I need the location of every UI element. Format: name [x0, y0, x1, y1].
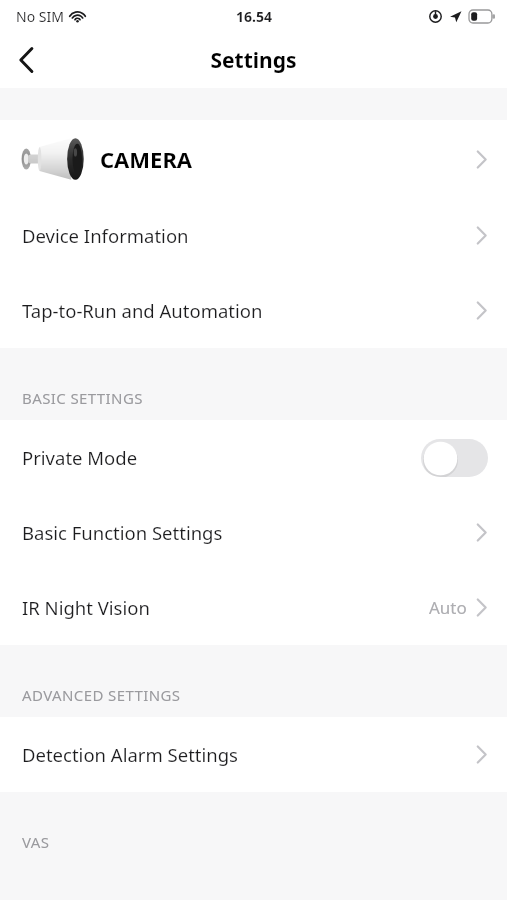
button[interactable]: Back — [0, 34, 52, 86]
staticText: BASIC SETTINGS — [22, 388, 143, 408]
staticText: No SIM — [16, 7, 64, 26]
button[interactable]: Basic Function Settings — [0, 495, 507, 570]
button[interactable]: Detection Alarm Settings — [0, 717, 507, 792]
staticText: 16.54 — [236, 7, 272, 26]
button[interactable]: Private Mode toggle — [421, 439, 488, 477]
staticText: Private Mode — [22, 445, 138, 470]
button[interactable]: Device Information — [0, 198, 507, 273]
button[interactable]: CAMERA — [0, 120, 507, 198]
staticText: IR Night Vision — [22, 595, 150, 620]
staticText: CAMERA — [100, 144, 193, 174]
button[interactable]: Tap-to-Run and Automation — [0, 273, 507, 348]
staticText: VAS — [22, 832, 50, 852]
staticText: Detection Alarm Settings — [22, 742, 238, 767]
staticText: Settings — [210, 46, 297, 75]
button[interactable]: Private Mode — [0, 420, 507, 495]
staticText: Basic Function Settings — [22, 520, 223, 545]
staticText: ADVANCED SETTINGS — [22, 685, 181, 705]
button[interactable]: IR Night Vision — [0, 570, 507, 645]
staticText: Device Information — [22, 223, 189, 248]
staticText: Tap-to-Run and Automation — [22, 298, 263, 323]
staticText: Auto — [429, 596, 467, 619]
